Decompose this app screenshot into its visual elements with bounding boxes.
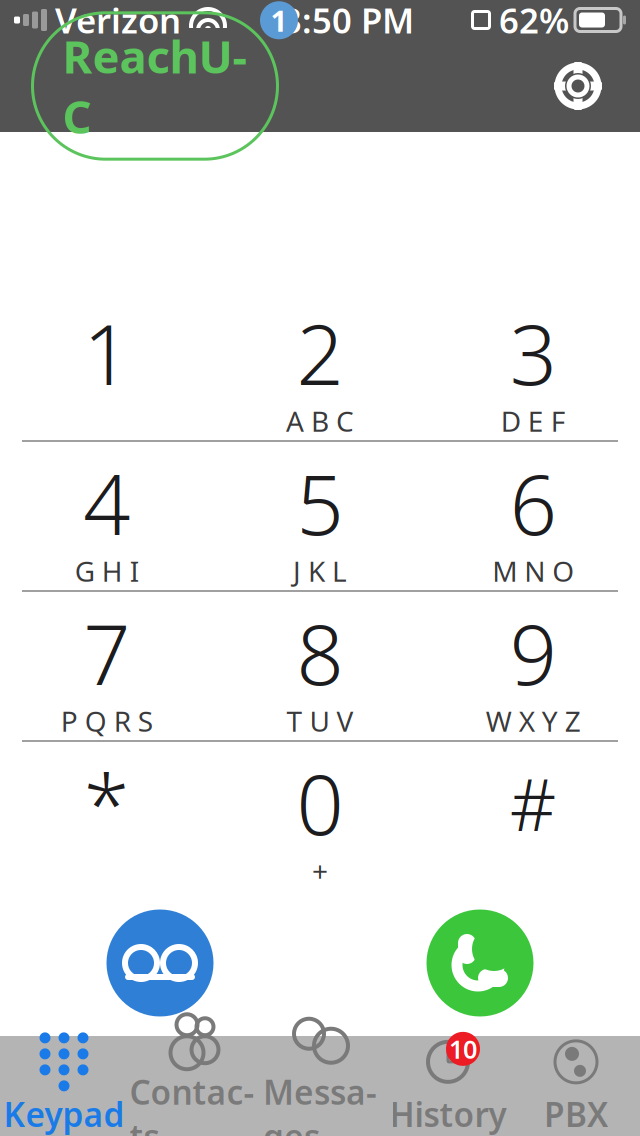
staticText: PBX [544, 1092, 608, 1136]
button[interactable]: 1 [0, 292, 213, 440]
staticText: 7 [83, 598, 130, 708]
button[interactable]: 8 [213, 592, 427, 740]
staticText: 4 [83, 448, 130, 558]
staticText: 2 [296, 298, 343, 408]
staticText: History [389, 1092, 506, 1136]
staticText: 10 [449, 1032, 477, 1066]
staticText: W X Y Z [486, 702, 581, 739]
button[interactable]: 4 [0, 442, 213, 590]
button[interactable]: 7 [0, 592, 213, 740]
staticText: 8 [296, 598, 343, 708]
button[interactable]: Call [426, 909, 533, 1016]
button[interactable]: Keypad [0, 1036, 128, 1136]
button[interactable]: Messages [256, 1036, 384, 1136]
staticText: M N O [492, 552, 574, 589]
staticText: G H I [75, 552, 139, 589]
button[interactable]: ReachUC [26, 13, 284, 159]
staticText: 1 [270, 1, 287, 40]
staticText: P Q R S [61, 702, 153, 739]
staticText: 62% [499, 0, 569, 43]
staticText: 0 [296, 748, 343, 858]
staticText: T U V [286, 702, 353, 739]
button[interactable]: 9 [427, 592, 640, 740]
staticText: J K L [293, 552, 347, 589]
button[interactable]: 0 [213, 742, 427, 890]
staticText: 3:50 PM [282, 0, 414, 43]
button[interactable]: 6 [427, 442, 640, 590]
staticText: * [84, 748, 130, 858]
staticText: 3 [510, 298, 557, 408]
staticText: A B C [286, 402, 354, 439]
staticText: Keypad [3, 1092, 124, 1136]
button[interactable]: 3 [427, 292, 640, 440]
staticText: 5 [296, 448, 343, 558]
button[interactable]: Contacts [128, 1036, 256, 1136]
staticText: Verizon [55, 0, 181, 43]
button[interactable]: 5 [213, 442, 427, 590]
staticText: ReachUC [62, 26, 247, 146]
staticText: Messages [263, 1070, 377, 1136]
button[interactable]: * [0, 742, 213, 890]
button[interactable]: 10 [384, 1036, 512, 1136]
staticText: # [510, 755, 557, 851]
staticText: 9 [510, 598, 557, 708]
staticText: D E F [501, 402, 566, 439]
button[interactable]: # [427, 742, 640, 890]
staticText: + [312, 852, 328, 889]
button[interactable]: Voicemail [106, 909, 213, 1016]
staticText: 1 [83, 298, 130, 408]
button[interactable]: 2 [213, 292, 427, 440]
staticText: Contacts [129, 1070, 254, 1136]
button[interactable]: Settings [542, 50, 614, 122]
staticText: 6 [510, 448, 557, 558]
button[interactable]: PBX [512, 1036, 640, 1136]
